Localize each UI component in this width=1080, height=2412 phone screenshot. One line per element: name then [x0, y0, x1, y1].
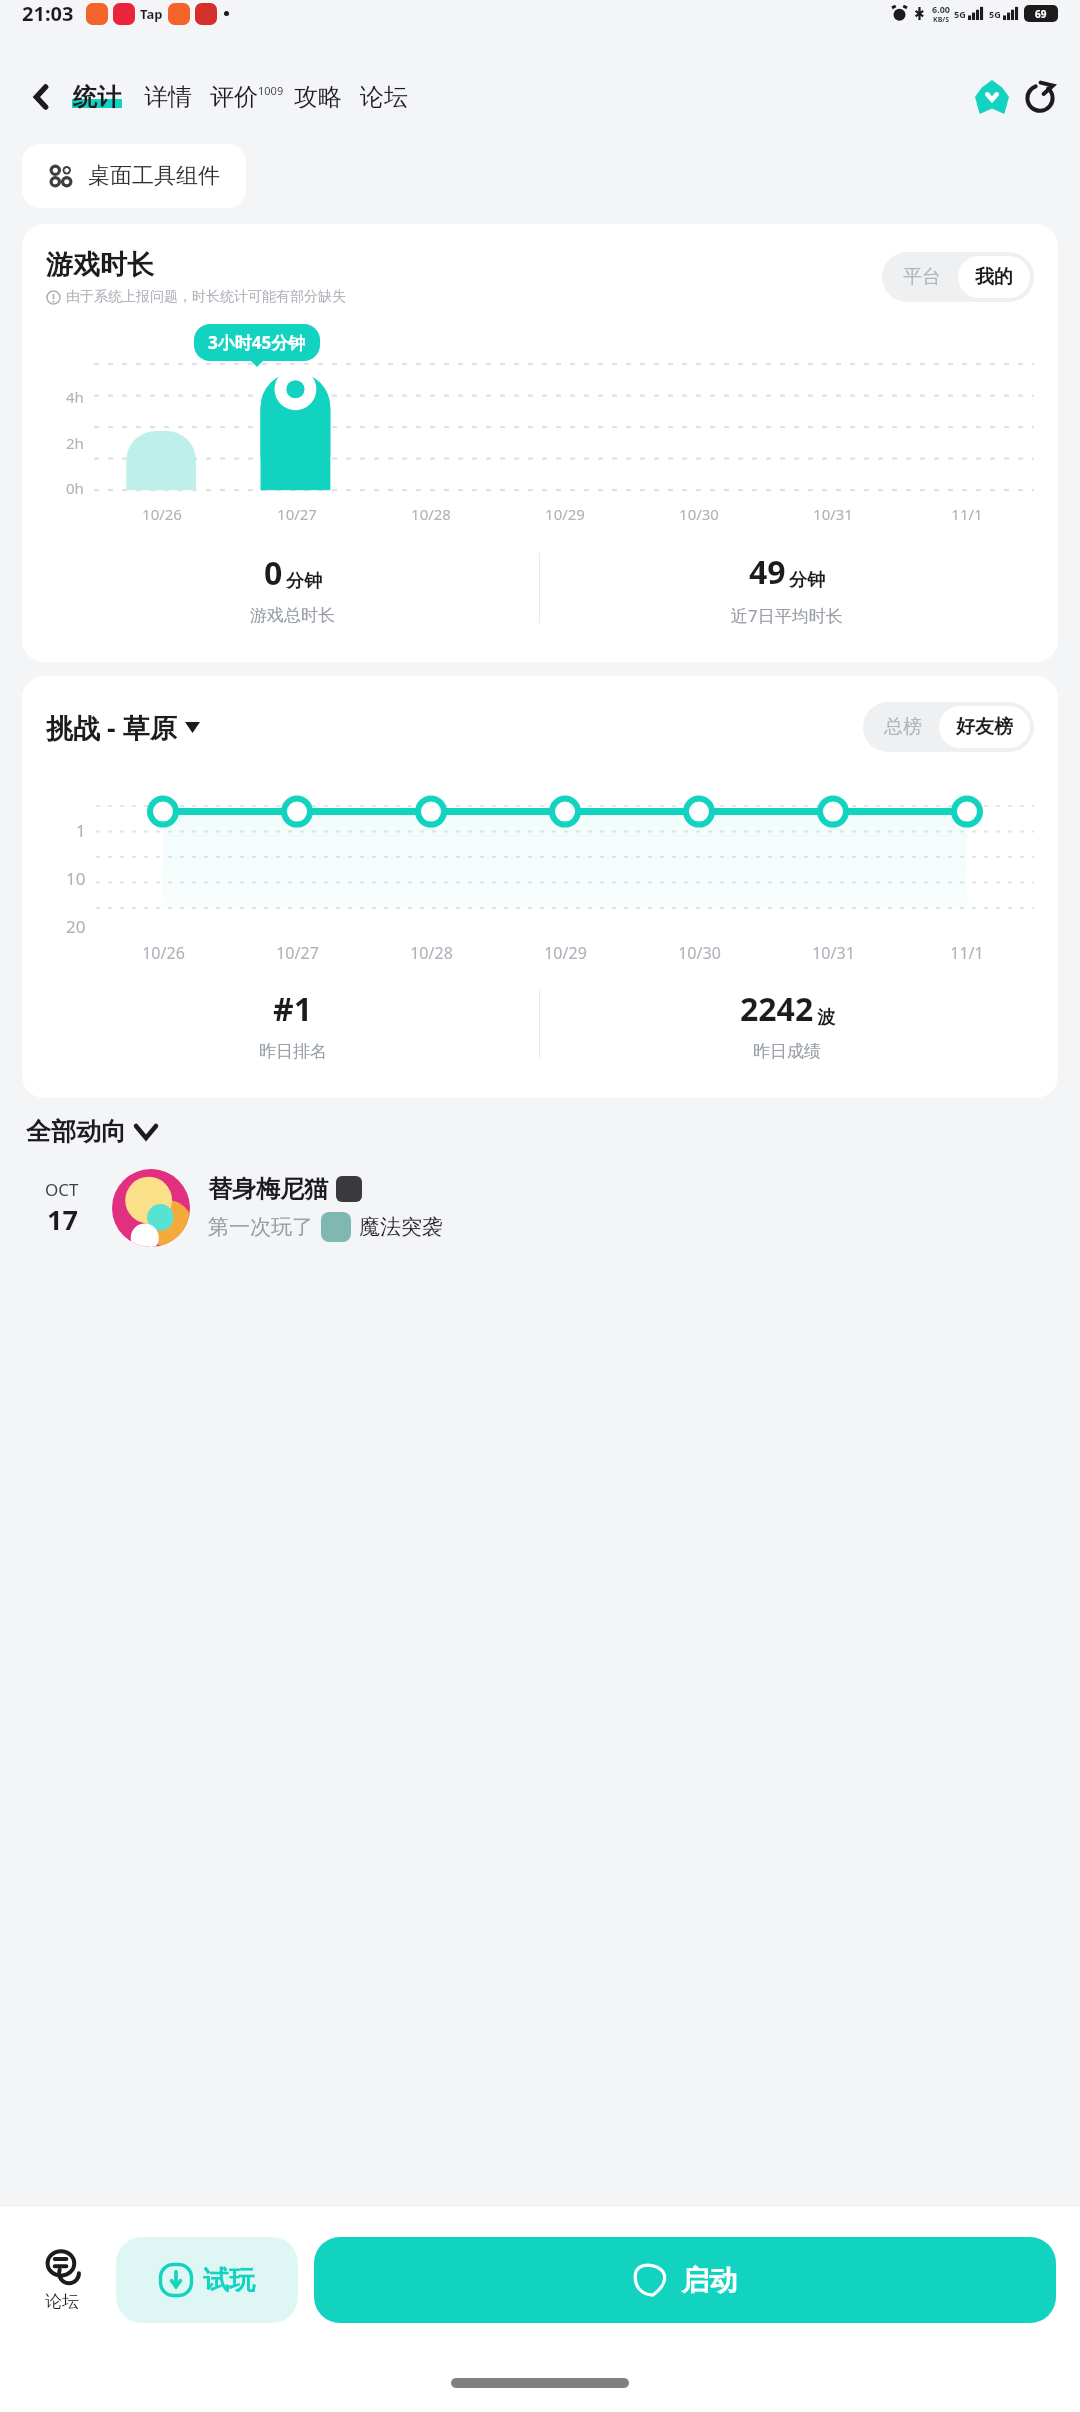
button[interactable]: 全部动向 [26, 1116, 156, 1147]
staticText: 10 [66, 867, 86, 890]
staticText: 2h [66, 433, 84, 453]
staticText: KB/S [933, 15, 950, 25]
button[interactable]: 评价 [210, 82, 284, 112]
staticText: 昨日成绩 [753, 1041, 821, 1062]
staticText: 论坛 [45, 2291, 79, 2312]
staticText: 由于系统上报问题，时长统计可能有部分缺失 [66, 288, 346, 306]
button[interactable]: 试玩 [116, 2237, 298, 2323]
staticText: 11/1 [950, 942, 984, 964]
button[interactable]: Favorite [972, 77, 1012, 117]
staticText: 近7日平均时长 [731, 604, 843, 627]
staticText: 10/27 [276, 942, 319, 964]
staticText: 平台 [903, 265, 941, 289]
staticText: 魔法突袭 [359, 1214, 443, 1240]
staticText: #1 [273, 987, 312, 1031]
staticText: 替身梅尼猫 [208, 1174, 328, 1204]
staticText: 10/28 [411, 504, 451, 524]
button[interactable]: 平台 [886, 256, 958, 298]
staticText: 桌面工具组件 [88, 162, 220, 190]
staticText: 游戏时长 [46, 248, 154, 282]
staticText: 6.00 [932, 3, 950, 15]
staticText: 49 [749, 550, 786, 594]
staticText: 全部动向 [26, 1116, 126, 1147]
staticText: 分钟 [286, 570, 322, 593]
button[interactable]: Share [1020, 77, 1060, 117]
staticText: 分钟 [789, 569, 825, 592]
staticText: 10/28 [410, 942, 453, 964]
staticText: 昨日排名 [259, 1041, 327, 1062]
staticText: Tap [140, 5, 163, 23]
staticText: 11/1 [951, 504, 983, 524]
staticText: 挑战 - 草原 [46, 709, 177, 746]
staticText: 4h [66, 387, 84, 407]
staticText: OCT [45, 1178, 79, 1201]
staticText: 10/30 [679, 504, 719, 524]
staticText: 17 [47, 1201, 78, 1238]
staticText: 10/27 [277, 504, 317, 524]
staticText: 10/26 [142, 504, 182, 524]
staticText: 试玩 [203, 2264, 255, 2297]
button[interactable]: 统计 [68, 82, 126, 112]
button[interactable]: OCT [26, 1169, 1054, 1247]
staticText: 5G [989, 8, 1001, 20]
staticText: 10/31 [813, 504, 853, 524]
button[interactable]: Back [20, 75, 64, 119]
staticText: 波 [817, 1006, 835, 1029]
staticText: 10/29 [545, 504, 585, 524]
button[interactable]: 启动 [314, 2237, 1056, 2323]
staticText: 我的 [975, 265, 1013, 289]
staticText: 10/30 [678, 942, 721, 964]
button[interactable]: 论坛 [24, 2249, 100, 2312]
button[interactable]: 详情 [144, 82, 192, 112]
staticText: 0 [264, 551, 283, 595]
staticText: 好友榜 [956, 715, 1013, 739]
button[interactable]: 攻略 [294, 82, 342, 112]
staticText: 5G [954, 8, 966, 20]
staticText: 总榜 [884, 715, 922, 739]
button[interactable]: 好友榜 [939, 706, 1030, 748]
button[interactable]: 总榜 [867, 706, 939, 748]
staticText: 第一次玩了 [208, 1214, 313, 1240]
button[interactable]: 我的 [958, 256, 1030, 298]
staticText: 69 [1035, 7, 1047, 21]
button[interactable]: 挑战 - 草原 [46, 709, 863, 746]
staticText: 3小时45分钟 [208, 331, 306, 354]
staticText: 10/29 [544, 942, 587, 964]
staticText: 启动 [681, 2263, 737, 2298]
staticText: 统计 [73, 82, 121, 112]
staticText: 10/31 [812, 942, 855, 964]
staticText: 游戏总时长 [250, 605, 335, 626]
button[interactable]: 论坛 [360, 82, 408, 112]
staticText: 评价 [210, 82, 258, 112]
staticText: 10/26 [142, 942, 185, 964]
staticText: 2242 [740, 987, 814, 1031]
staticText: 20 [66, 915, 86, 938]
staticText: 21:03 [22, 0, 74, 27]
staticText: 0h [66, 478, 84, 498]
staticText: 1 [76, 819, 86, 842]
button[interactable]: 桌面工具组件 [22, 144, 246, 208]
staticText: 1009 [258, 83, 284, 98]
